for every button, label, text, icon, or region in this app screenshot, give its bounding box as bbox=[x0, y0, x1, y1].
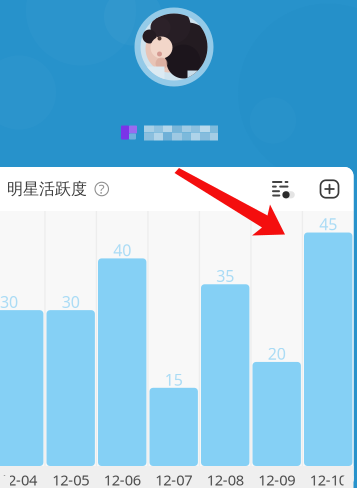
staticText: ? bbox=[99, 180, 105, 197]
staticText: 30 bbox=[0, 291, 18, 312]
staticText: 30 bbox=[62, 291, 80, 312]
staticText: 45 bbox=[319, 213, 337, 235]
staticText: 12-09 bbox=[258, 470, 295, 488]
staticText: 15 bbox=[165, 369, 183, 390]
staticText: 12-10 bbox=[310, 470, 347, 488]
staticText: 35 bbox=[216, 265, 234, 286]
staticText: 12-08 bbox=[207, 470, 244, 488]
staticText: 12-04 bbox=[0, 470, 37, 488]
button[interactable]: Add bbox=[300, 173, 353, 205]
button[interactable]: About celebrity activity bbox=[87, 174, 112, 204]
button[interactable]: Profile photo bbox=[134, 7, 213, 86]
staticText: 40 bbox=[113, 239, 131, 261]
staticText: 12-06 bbox=[104, 470, 141, 488]
staticText: 12-05 bbox=[52, 470, 89, 488]
button[interactable]: Filter bbox=[262, 174, 300, 204]
staticText: 12-07 bbox=[155, 470, 192, 488]
staticText: 明星活跃度 bbox=[7, 179, 87, 199]
staticText: 20 bbox=[268, 343, 286, 364]
